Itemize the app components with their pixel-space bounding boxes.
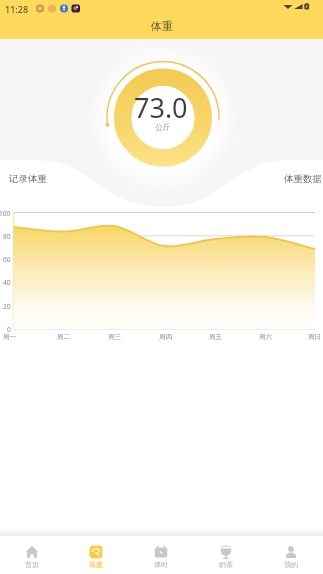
staticText: 首页 (25, 560, 39, 569)
button[interactable]: 课时 (128, 536, 193, 574)
staticText: 周一 (3, 333, 16, 341)
button[interactable]: 体重数据 (232, 171, 322, 187)
button[interactable]: 记录体重 (9, 171, 99, 187)
staticText: 100 (0, 209, 11, 218)
staticText: 课时 (154, 560, 168, 569)
staticText: 11:28 (5, 3, 29, 15)
staticText: 周二 (57, 333, 70, 341)
button[interactable]: 体重 (64, 536, 128, 574)
staticText: 73.0 (134, 89, 188, 119)
button[interactable]: 首页 (0, 536, 64, 574)
staticText: 我的 (284, 560, 298, 569)
staticText: 记录体重 (9, 173, 47, 185)
button[interactable]: 奶茶 (193, 536, 258, 574)
staticText: 周六 (259, 333, 272, 341)
staticText: 体重数据 (284, 173, 322, 185)
staticText: 40 (3, 278, 11, 287)
staticText: 60 (3, 255, 11, 264)
button[interactable]: 我的 (258, 536, 323, 574)
staticText: 周日 (308, 333, 321, 341)
staticText: 周四 (159, 333, 172, 341)
button[interactable] (107, 61, 219, 173)
staticText: 周三 (108, 333, 121, 341)
staticText: 公斤 (155, 122, 171, 132)
staticText: 体重 (89, 560, 103, 569)
staticText: 0 (7, 325, 11, 334)
staticText: 奶茶 (219, 560, 233, 569)
staticText: 周五 (209, 333, 222, 341)
staticText: 体重 (151, 19, 173, 33)
staticText: 80 (3, 232, 11, 241)
staticText: 20 (3, 302, 11, 311)
